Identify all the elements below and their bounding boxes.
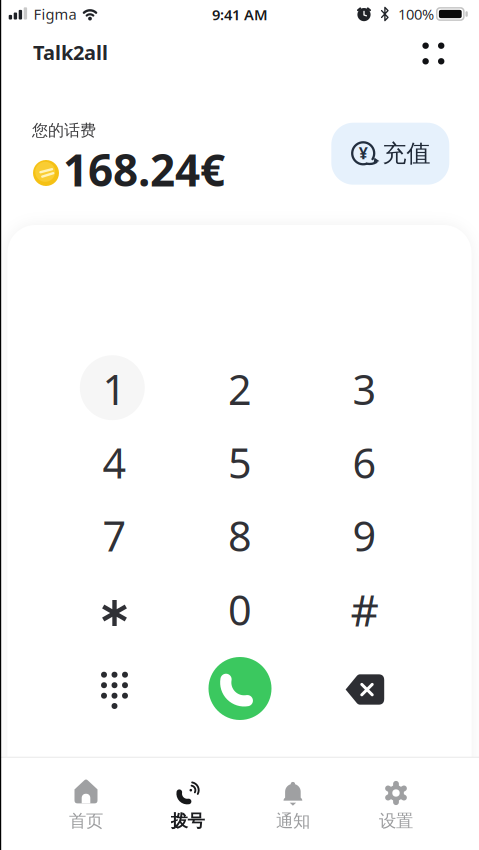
button[interactable]: 9 bbox=[331, 502, 397, 568]
staticText: 168.24€ bbox=[63, 140, 225, 199]
button[interactable]: 0 bbox=[207, 576, 273, 642]
button[interactable]: ¥ bbox=[331, 123, 449, 185]
button[interactable]: 4 bbox=[81, 429, 147, 495]
staticText: 100% bbox=[398, 4, 434, 24]
staticText: ¥ bbox=[359, 142, 368, 164]
button[interactable]: Menu bbox=[413, 33, 453, 73]
staticText: 1 bbox=[102, 362, 126, 416]
button[interactable]: 8 bbox=[207, 502, 273, 568]
staticText: 充值 bbox=[382, 139, 430, 168]
staticText: 9:41 AM bbox=[212, 5, 268, 24]
button[interactable]: 5 bbox=[207, 429, 273, 495]
staticText: 5 bbox=[228, 435, 252, 490]
staticText: 2 bbox=[228, 362, 252, 416]
button[interactable]: 2 bbox=[207, 356, 273, 422]
button[interactable]: 通知 bbox=[250, 768, 336, 832]
button[interactable]: 3 bbox=[331, 356, 397, 422]
staticText: 0 bbox=[228, 582, 252, 637]
staticText: 9 bbox=[352, 508, 376, 563]
staticText: 拨号 bbox=[170, 810, 204, 832]
button[interactable]: 1 bbox=[81, 356, 147, 422]
button[interactable]: Keypad bbox=[87, 662, 143, 718]
button[interactable]: 拨号 bbox=[144, 768, 230, 832]
staticText: 8 bbox=[228, 508, 252, 563]
staticText: 首页 bbox=[69, 810, 103, 832]
staticText: 3 bbox=[352, 362, 376, 416]
staticText: 4 bbox=[102, 435, 126, 490]
button[interactable]: Call bbox=[208, 657, 271, 720]
staticText: Talk2all bbox=[33, 39, 108, 66]
staticText: 您的话费 bbox=[32, 121, 96, 140]
staticText: 通知 bbox=[276, 810, 310, 832]
button[interactable]: 7 bbox=[81, 502, 147, 568]
button[interactable]: * bbox=[81, 580, 147, 646]
button[interactable]: 6 bbox=[331, 429, 397, 495]
button[interactable]: # bbox=[331, 576, 397, 642]
button[interactable]: 设置 bbox=[353, 768, 439, 832]
staticText: # bbox=[350, 580, 378, 639]
staticText: Figma bbox=[33, 4, 76, 24]
staticText: 设置 bbox=[379, 810, 413, 832]
staticText: 6 bbox=[352, 435, 376, 490]
button[interactable]: 首页 bbox=[43, 768, 129, 832]
button[interactable]: Delete bbox=[337, 667, 393, 713]
staticText: 7 bbox=[102, 508, 126, 563]
